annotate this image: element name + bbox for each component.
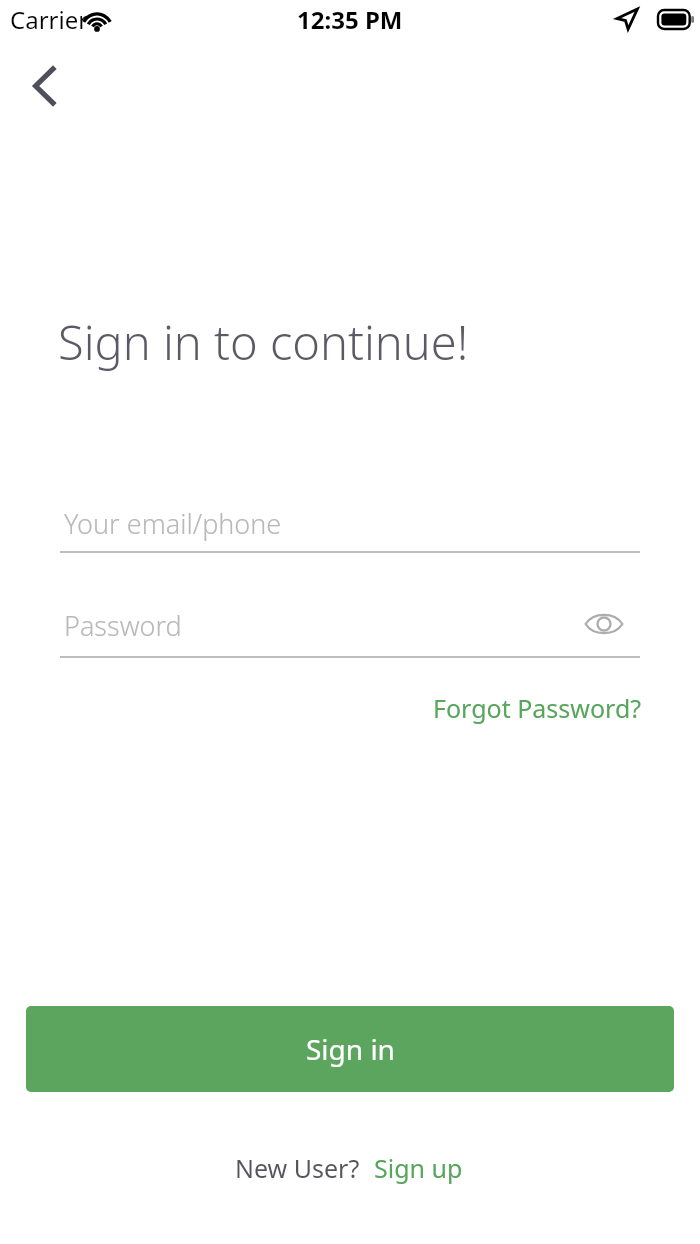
staticText: Carrier	[10, 3, 89, 36]
staticText: New User?	[235, 1151, 360, 1185]
staticText: Password	[64, 607, 182, 644]
staticText: Your email/phone	[64, 505, 282, 542]
button[interactable]: Password	[60, 595, 640, 656]
staticText: Sign up	[374, 1151, 463, 1185]
staticText: 12:35 PM	[297, 3, 403, 36]
staticText: Forgot Password?	[433, 691, 642, 725]
button[interactable]: Sign in	[26, 1006, 674, 1092]
button[interactable]: Your email/phone	[60, 494, 640, 552]
button[interactable]: Back	[14, 54, 78, 118]
staticText: Sign in to continue!	[58, 310, 469, 374]
button[interactable]: Show password	[577, 597, 631, 651]
button[interactable]: Sign up	[372, 1151, 465, 1185]
staticText: Sign in	[306, 1030, 395, 1068]
button[interactable]: Forgot Password?	[420, 685, 642, 731]
